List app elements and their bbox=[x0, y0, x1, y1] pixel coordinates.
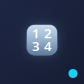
staticText: 3 bbox=[32, 37, 40, 55]
button[interactable]: Numbers bbox=[27, 25, 57, 55]
staticText: 2 bbox=[44, 24, 52, 42]
staticText: 4 bbox=[44, 37, 52, 55]
button[interactable]: Status bbox=[68, 69, 77, 78]
staticText: 1 bbox=[32, 24, 40, 42]
